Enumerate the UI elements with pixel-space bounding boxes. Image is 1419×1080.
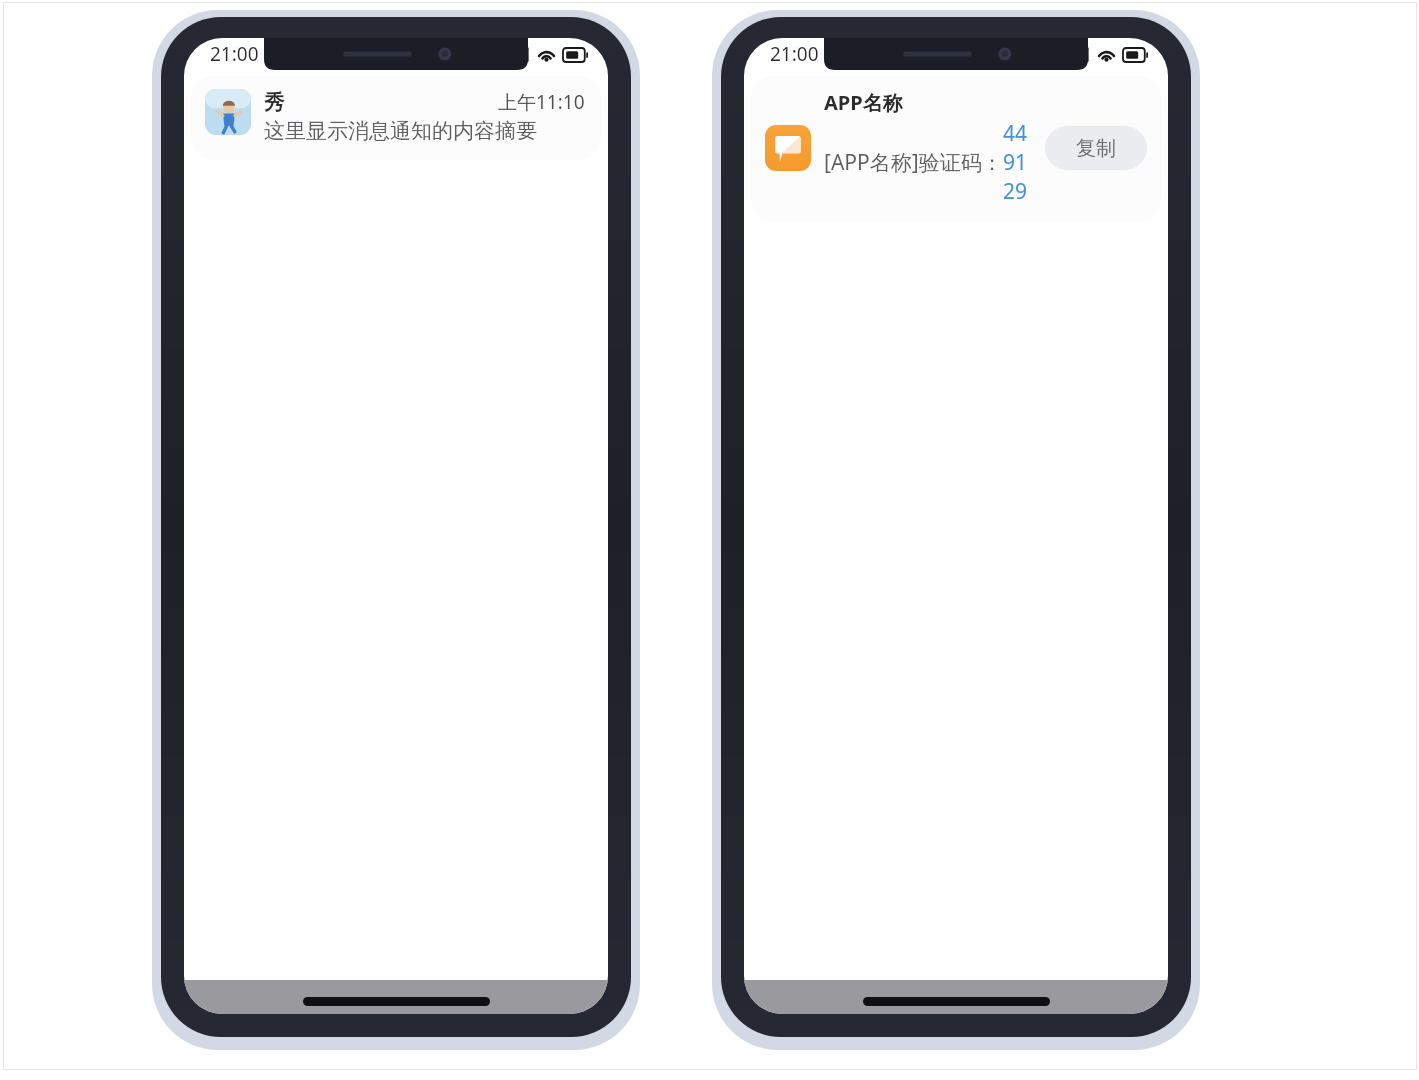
button[interactable]: App icon — [751, 76, 1161, 222]
staticText: 449129 — [1003, 119, 1039, 206]
staticText: 这里显示消息通知的内容摘要 — [264, 118, 537, 144]
button[interactable]: 秀 — [191, 76, 601, 160]
staticText: APP名称 — [824, 89, 903, 116]
staticText: 21:00 — [770, 41, 819, 67]
staticText: 上午11:10 — [498, 89, 585, 115]
staticText: [APP名称]验证码： — [824, 148, 1003, 177]
staticText: 复制 — [1076, 136, 1116, 161]
staticText: 秀 — [264, 90, 284, 115]
other: App icon — [765, 125, 811, 171]
staticText: 21:00 — [210, 41, 259, 67]
button[interactable]: 复制 — [1045, 126, 1147, 170]
